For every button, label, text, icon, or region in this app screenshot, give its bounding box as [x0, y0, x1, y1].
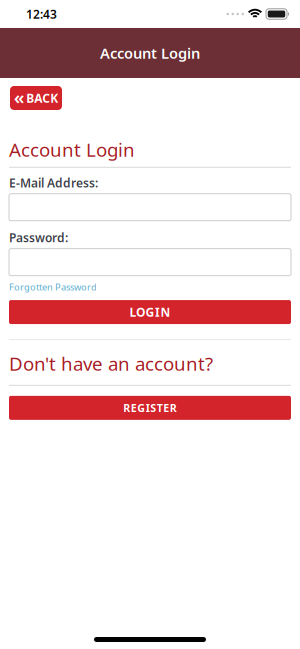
- button[interactable]: LOGIN: [9, 300, 291, 324]
- staticText: REGISTER: [123, 401, 177, 415]
- staticText: E-Mail Address:: [9, 175, 98, 191]
- button[interactable]: Forgotten Password: [9, 281, 97, 293]
- staticText: 12:43: [26, 6, 57, 22]
- staticText: Don't have an account?: [9, 351, 213, 376]
- staticText: LOGIN: [129, 304, 170, 320]
- button[interactable]: Password: [9, 249, 291, 276]
- staticText: Forgotten Password: [9, 281, 97, 293]
- staticText: Password:: [9, 230, 68, 246]
- staticText: Account Login: [9, 137, 135, 162]
- button[interactable]: REGISTER: [9, 396, 291, 420]
- staticText: BACK: [26, 90, 58, 106]
- staticText: Account Login: [100, 43, 200, 63]
- button[interactable]: E-Mail Address: [9, 194, 291, 221]
- button[interactable]: Back: [10, 86, 62, 110]
- staticText: «: [14, 85, 25, 109]
